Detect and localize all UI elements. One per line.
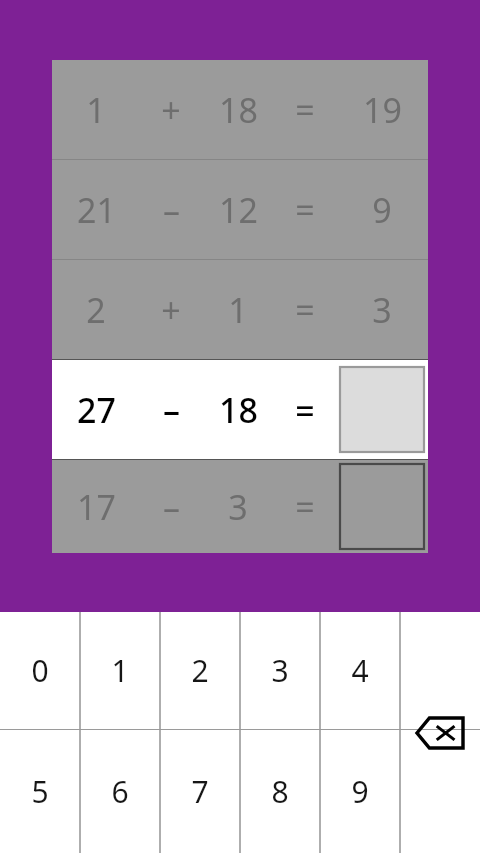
button[interactable]: 17 bbox=[52, 460, 428, 553]
staticText: 4 bbox=[351, 650, 369, 691]
button[interactable]: 2 bbox=[52, 260, 428, 359]
button[interactable]: 21 bbox=[52, 160, 428, 259]
staticText: 6 bbox=[111, 771, 129, 812]
button[interactable]: 0 bbox=[0, 612, 80, 729]
staticText: = bbox=[295, 187, 315, 233]
staticText: 19 bbox=[363, 87, 402, 133]
staticText: 8 bbox=[271, 771, 289, 812]
button[interactable]: 4 bbox=[320, 612, 400, 729]
staticText: 2 bbox=[86, 287, 106, 333]
staticText: 3 bbox=[372, 287, 392, 333]
staticText: 9 bbox=[372, 187, 392, 233]
button[interactable]: 8 bbox=[240, 730, 320, 853]
button[interactable]: 1 bbox=[80, 612, 160, 729]
staticText: – bbox=[163, 387, 180, 433]
staticText: = bbox=[295, 484, 315, 530]
staticText: 1 bbox=[86, 87, 106, 133]
button[interactable]: 9 bbox=[320, 730, 400, 853]
staticText: 5 bbox=[31, 771, 49, 812]
staticText: 27 bbox=[77, 387, 116, 433]
staticText: – bbox=[163, 187, 180, 233]
staticText: = bbox=[295, 387, 315, 433]
button[interactable]: 1 bbox=[52, 60, 428, 159]
button[interactable]: 3 bbox=[240, 612, 320, 729]
staticText: 17 bbox=[77, 484, 116, 530]
button[interactable]: 5 bbox=[0, 730, 80, 853]
staticText: 18 bbox=[219, 87, 258, 133]
staticText: 21 bbox=[77, 187, 116, 233]
button[interactable]: 7 bbox=[160, 730, 240, 853]
staticText: 12 bbox=[219, 187, 258, 233]
button[interactable]: 27 bbox=[52, 360, 428, 459]
staticText: – bbox=[163, 484, 180, 530]
button[interactable]: 2 bbox=[160, 612, 240, 729]
button[interactable]: Answer field bbox=[340, 464, 424, 549]
staticText: 3 bbox=[228, 484, 248, 530]
button[interactable]: Backspace bbox=[400, 612, 480, 853]
staticText: 2 bbox=[191, 650, 209, 691]
staticText: 7 bbox=[191, 771, 209, 812]
staticText: 18 bbox=[219, 387, 258, 433]
staticText: 1 bbox=[111, 650, 129, 691]
staticText: + bbox=[161, 287, 181, 333]
staticText: 3 bbox=[271, 650, 289, 691]
button[interactable]: Answer field bbox=[340, 367, 424, 452]
staticText: = bbox=[295, 287, 315, 333]
staticText: 9 bbox=[351, 771, 369, 812]
button[interactable]: 6 bbox=[80, 730, 160, 853]
staticText: = bbox=[295, 87, 315, 133]
staticText: + bbox=[161, 87, 181, 133]
staticText: 0 bbox=[31, 650, 49, 691]
staticText: 1 bbox=[228, 287, 248, 333]
